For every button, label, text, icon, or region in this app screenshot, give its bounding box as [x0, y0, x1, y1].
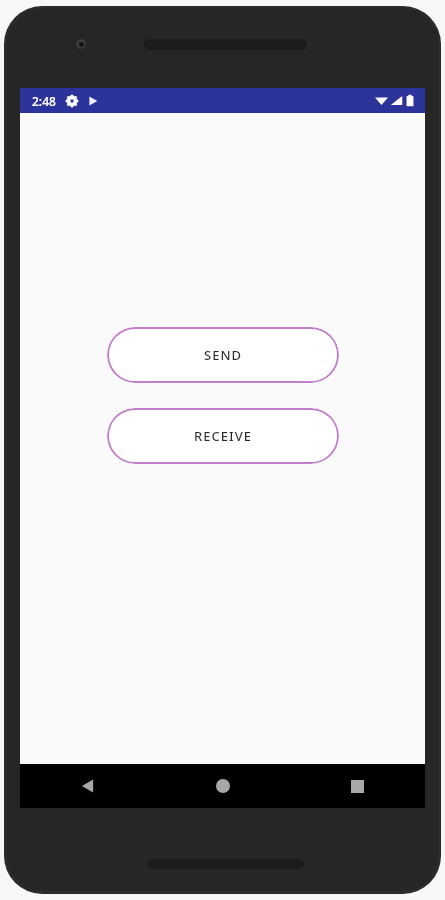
button[interactable]: Home [155, 764, 290, 808]
button[interactable]: RECEIVE [107, 408, 339, 464]
staticText: SEND [204, 346, 242, 364]
button[interactable]: Back [20, 764, 155, 808]
staticText: 2:48 [32, 93, 56, 109]
staticText: RECEIVE [194, 427, 252, 445]
button[interactable]: SEND [107, 327, 339, 383]
button[interactable]: Recent apps [290, 764, 425, 808]
